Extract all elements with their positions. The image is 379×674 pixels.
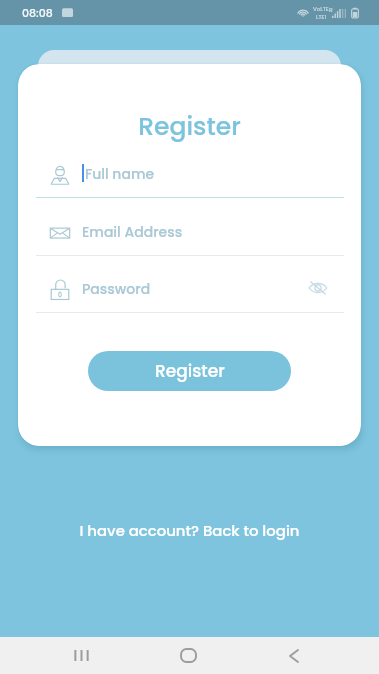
staticText: Email Address bbox=[82, 222, 183, 242]
button[interactable]: I have account? Back to login bbox=[0, 520, 379, 541]
button[interactable]: Toggle password visibility bbox=[308, 278, 328, 298]
staticText: VoLTE bbox=[313, 5, 329, 13]
button[interactable]: Register bbox=[88, 351, 291, 391]
staticText: Register bbox=[155, 359, 225, 383]
button[interactable]: Recent apps bbox=[60, 637, 102, 674]
staticText: 08:08 bbox=[22, 5, 53, 20]
button[interactable]: Back bbox=[273, 637, 315, 674]
staticText: Register bbox=[18, 109, 361, 144]
button[interactable]: Email Address bbox=[36, 210, 344, 256]
staticText: R bbox=[329, 6, 333, 14]
staticText: LTE1 bbox=[316, 13, 327, 21]
button[interactable]: Password bbox=[36, 267, 344, 313]
staticText: Password bbox=[82, 279, 151, 299]
button[interactable]: Home bbox=[167, 637, 209, 674]
button[interactable]: Full name bbox=[36, 152, 344, 198]
staticText: Full name bbox=[85, 164, 155, 184]
